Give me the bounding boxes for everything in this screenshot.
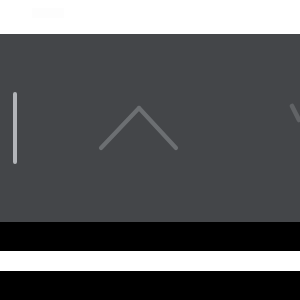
button[interactable]: Next	[284, 96, 300, 128]
button[interactable]: Collapse	[89, 96, 189, 160]
button[interactable]: Page indicator	[13, 92, 17, 164]
